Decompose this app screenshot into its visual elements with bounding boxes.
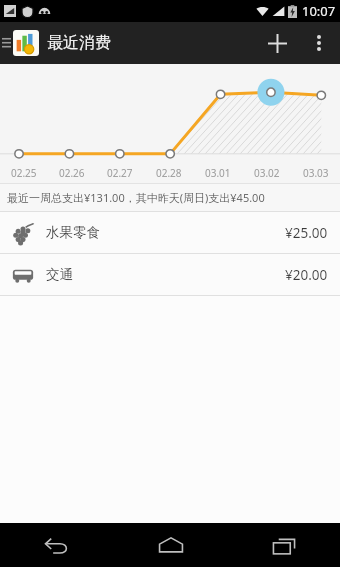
staticText: 03.03 <box>303 166 329 180</box>
staticText: 最近消费 <box>47 33 111 53</box>
staticText: 02.25 <box>11 166 37 180</box>
button[interactable]: Recent apps <box>227 523 340 567</box>
staticText: ¥25.00 <box>285 224 328 242</box>
button[interactable]: More options <box>298 22 340 64</box>
staticText: 02.27 <box>107 166 133 180</box>
staticText: 03.02 <box>254 166 280 180</box>
button[interactable]: Home <box>114 523 227 567</box>
button[interactable]: 交通 <box>0 254 340 295</box>
staticText: 02.26 <box>59 166 85 180</box>
button[interactable]: Add <box>256 22 298 64</box>
staticText: 最近一周总支出¥131.00，其中昨天(周日)支出¥45.00 <box>7 190 265 205</box>
staticText: 水果零食 <box>46 224 100 241</box>
button[interactable]: 水果零食 <box>0 212 340 253</box>
staticText: ¥20.00 <box>285 266 328 284</box>
staticText: 03.01 <box>205 166 231 180</box>
staticText: 02.28 <box>156 166 182 180</box>
staticText: 10:07 <box>302 2 336 20</box>
staticText: 交通 <box>46 266 73 283</box>
button[interactable]: Back <box>0 523 114 567</box>
